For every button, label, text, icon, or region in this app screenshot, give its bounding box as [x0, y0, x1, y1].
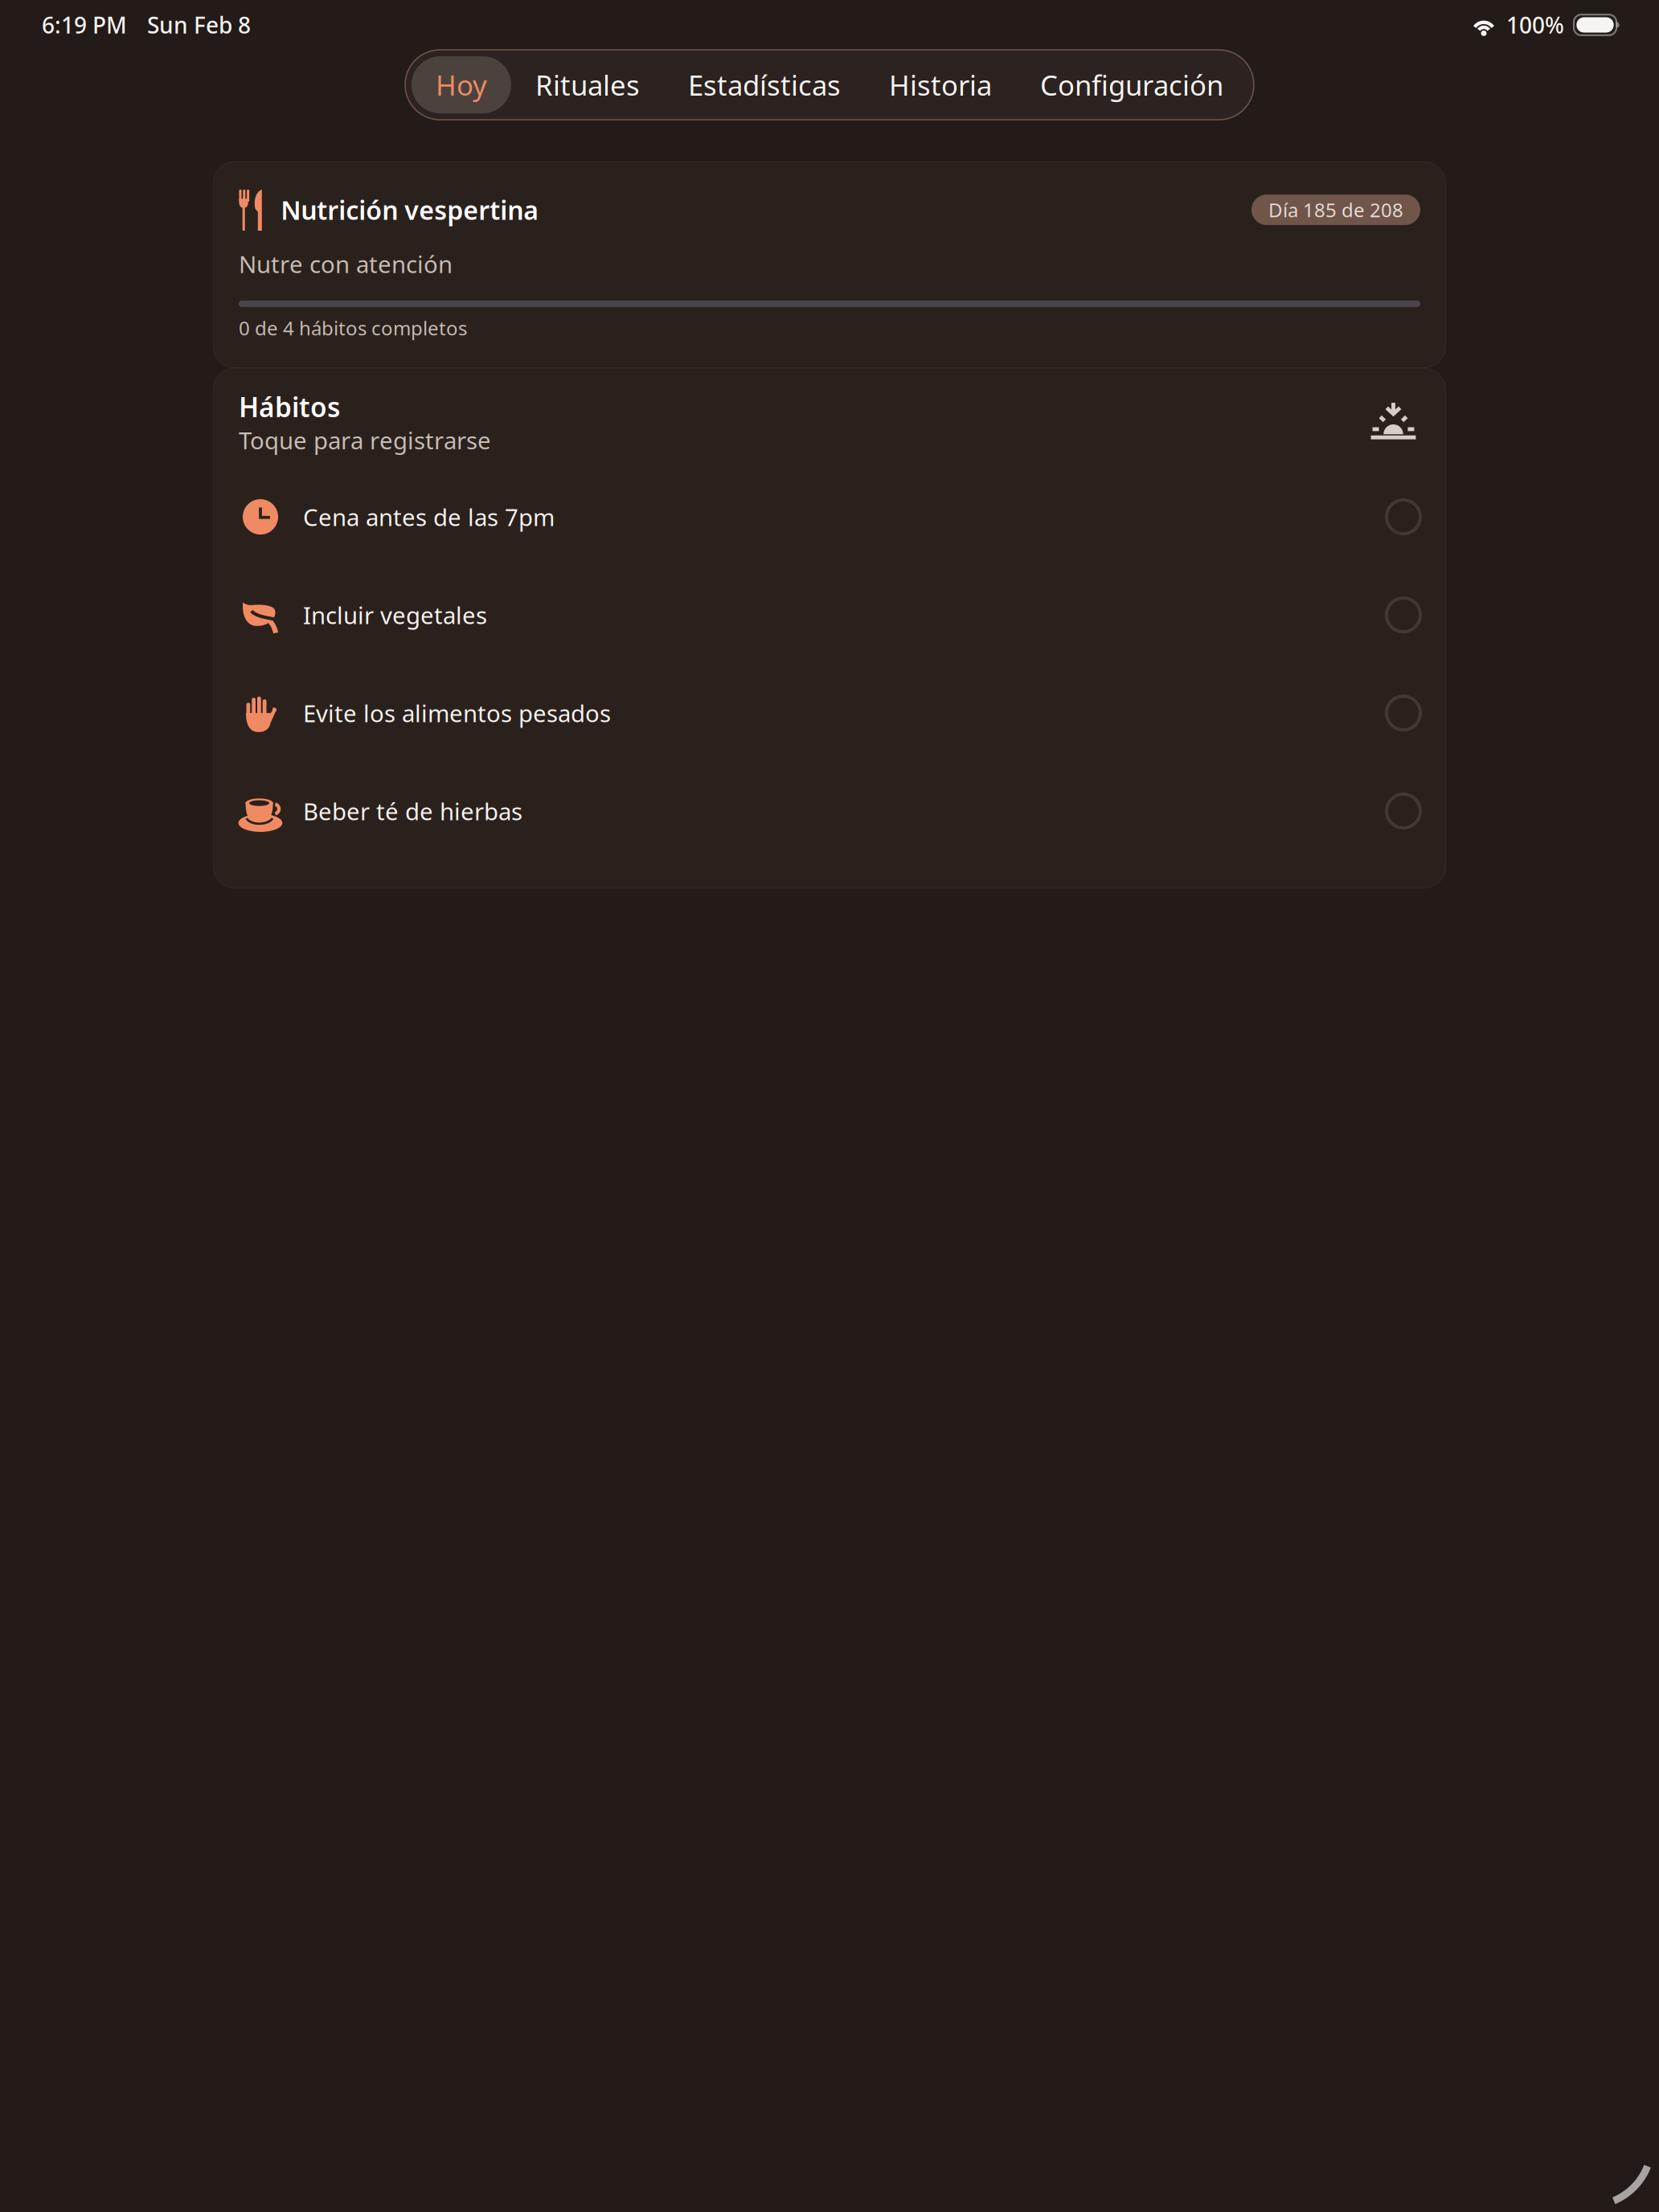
staticText: Beber té de hierbas: [303, 795, 522, 827]
staticText: Historia: [889, 66, 992, 103]
button[interactable]: Hoy: [412, 56, 511, 113]
staticText: Hábitos: [239, 389, 340, 424]
button[interactable]: Configuración: [1016, 56, 1247, 113]
button[interactable]: Evite los alimentos pesados: [239, 664, 1420, 762]
staticText: Toque para registrarse: [239, 424, 491, 456]
button[interactable]: Cena antes de las 7pm: [239, 468, 1420, 566]
button[interactable]: Incluir vegetales: [239, 566, 1420, 664]
staticText: Nutrición vespertina: [281, 193, 539, 227]
staticText: Sun Feb 8: [147, 10, 251, 40]
button[interactable]: Beber té de hierbas: [239, 762, 1420, 860]
button[interactable]: Rituales: [511, 56, 664, 113]
staticText: Estadísticas: [688, 66, 841, 103]
staticText: Evite los alimentos pesados: [303, 697, 611, 729]
staticText: Incluir vegetales: [303, 599, 487, 631]
staticText: Rituales: [535, 66, 640, 103]
staticText: Hoy: [436, 66, 487, 103]
staticText: Cena antes de las 7pm: [303, 501, 555, 533]
staticText: Día 185 de 208: [1268, 197, 1403, 223]
staticText: 100%: [1506, 10, 1564, 40]
button[interactable]: Historia: [865, 56, 1016, 113]
staticText: 0 de 4 hábitos completos: [239, 315, 467, 341]
staticText: Configuración: [1040, 66, 1223, 103]
staticText: Nutre con atención: [239, 248, 453, 280]
staticText: 6:19 PM: [42, 10, 127, 40]
button[interactable]: Estadísticas: [664, 56, 865, 113]
